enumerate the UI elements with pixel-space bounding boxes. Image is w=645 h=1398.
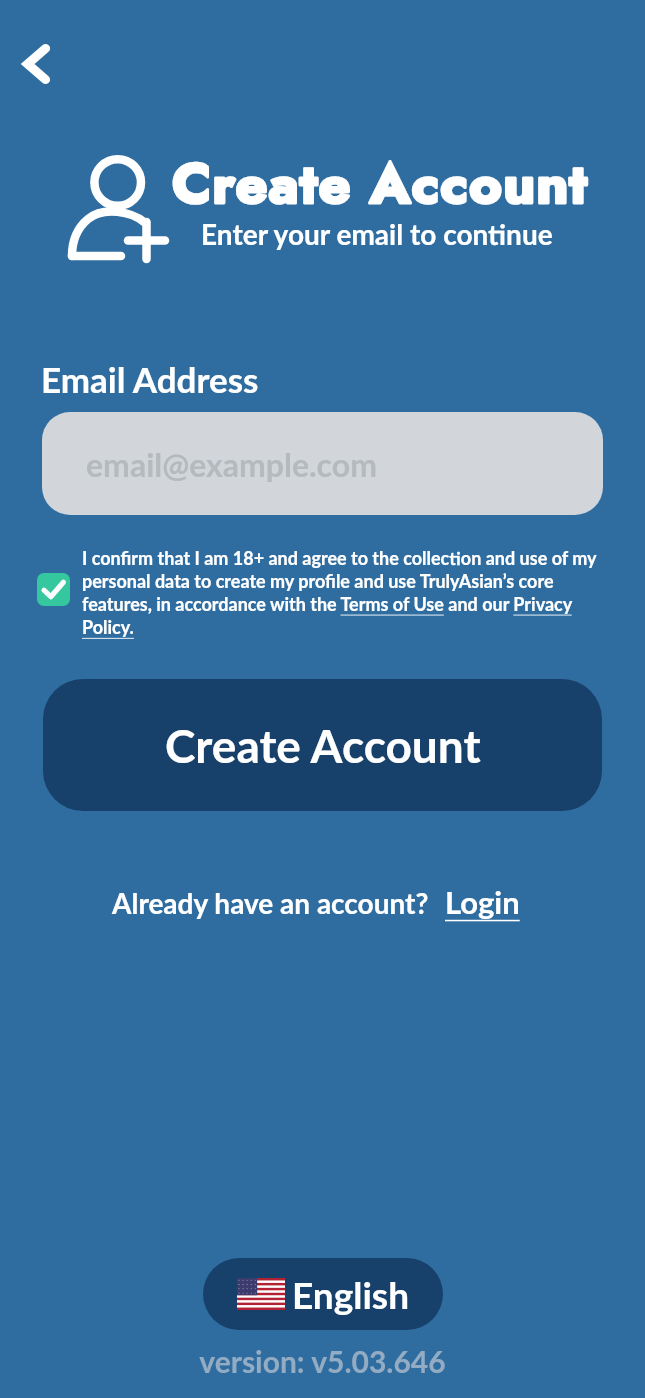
staticText: Create Account: [165, 718, 481, 773]
staticText: Email Address: [41, 358, 259, 400]
staticText: Create Account: [172, 143, 589, 224]
button[interactable]: Create Account: [43, 679, 602, 811]
staticText: version: v5.03.646: [0, 1343, 645, 1379]
button[interactable]: email@example.com: [42, 412, 603, 515]
staticText: Enter your email to continue: [201, 217, 553, 251]
staticText: Already have an account?: [112, 886, 429, 920]
button[interactable]: English: [203, 1258, 443, 1330]
staticText: English: [292, 1272, 409, 1316]
staticText: Create Account: [172, 143, 589, 224]
staticText: email@example.com: [86, 445, 377, 483]
button[interactable]: Back: [6, 34, 66, 94]
button[interactable]: I agree to the terms: [37, 573, 70, 606]
staticText: I confirm that I am 18+ and agree to the…: [82, 547, 606, 638]
button[interactable]: Login: [445, 883, 520, 920]
